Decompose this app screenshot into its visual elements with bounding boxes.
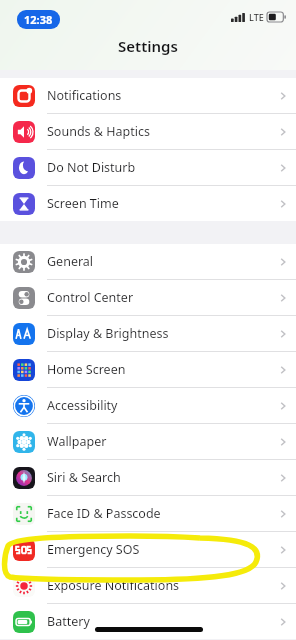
- button[interactable]: Screen Time: [0, 186, 296, 221]
- button[interactable]: Exposure Notifications: [0, 568, 296, 603]
- staticText: Settings: [118, 36, 178, 56]
- staticText: Control Center: [47, 289, 134, 306]
- staticText: 12:38: [24, 12, 53, 27]
- button[interactable]: Face ID & Passcode: [0, 496, 296, 531]
- button[interactable]: Home Screen: [0, 352, 296, 387]
- staticText: Exposure Notifications: [47, 577, 180, 594]
- staticText: Display & Brightness: [47, 325, 169, 342]
- button[interactable]: Sounds & Haptics: [0, 114, 296, 149]
- staticText: Do Not Disturb: [47, 159, 136, 176]
- staticText: Sounds & Haptics: [47, 123, 150, 140]
- staticText: Emergency SOS: [47, 541, 140, 558]
- staticText: Wallpaper: [47, 433, 107, 450]
- staticText: LTE: [249, 11, 264, 23]
- staticText: General: [47, 253, 94, 270]
- staticText: Siri & Search: [47, 469, 121, 486]
- staticText: Accessibility: [47, 397, 118, 414]
- button[interactable]: Emergency SOS: [0, 532, 296, 567]
- staticText: Battery: [47, 613, 90, 630]
- staticText: Notifications: [47, 87, 122, 104]
- button[interactable]: Control Center: [0, 280, 296, 315]
- button[interactable]: General: [0, 244, 296, 279]
- button[interactable]: Display & Brightness: [0, 316, 296, 351]
- staticText: Face ID & Passcode: [47, 505, 161, 522]
- button[interactable]: Battery: [0, 604, 296, 639]
- staticText: Home Screen: [47, 361, 126, 378]
- button[interactable]: Accessibility: [0, 388, 296, 423]
- button[interactable]: Notifications: [0, 78, 296, 113]
- button[interactable]: Siri & Search: [0, 460, 296, 495]
- button[interactable]: Wallpaper: [0, 424, 296, 459]
- staticText: Screen Time: [47, 195, 119, 212]
- button[interactable]: Do Not Disturb: [0, 150, 296, 185]
